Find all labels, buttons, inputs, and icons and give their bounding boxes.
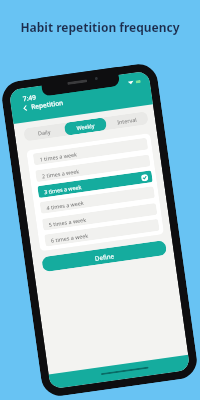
staticText: 5 times a week <box>48 216 87 228</box>
button[interactable]: 2 times a week <box>35 154 151 182</box>
button[interactable]: 5 times a week <box>42 203 157 231</box>
staticText: Define <box>94 251 115 262</box>
staticText: 3 times a week <box>44 183 82 195</box>
staticText: 2 times a week <box>41 167 80 179</box>
button[interactable]: 4 times a week <box>39 186 155 214</box>
button[interactable]: Define <box>41 240 167 272</box>
button[interactable]: 3 times a week <box>37 170 153 198</box>
button[interactable]: 1 times a week <box>33 137 148 165</box>
button[interactable]: Weekly <box>64 117 107 136</box>
button[interactable]: Interval <box>105 111 149 130</box>
staticText: 4 times a week <box>46 199 84 211</box>
other: Back <box>21 104 30 113</box>
button[interactable]: Back <box>21 98 64 113</box>
button[interactable]: 6 times a week <box>44 219 160 247</box>
staticText: 1 times a week <box>39 150 78 163</box>
staticText: 7:49 <box>22 93 36 103</box>
staticText: Interval <box>117 116 137 125</box>
button[interactable]: Daily <box>23 123 66 141</box>
staticText: 6 times a week <box>50 232 89 244</box>
staticText: Habit repetition frequency <box>0 19 200 35</box>
staticText: Weekly <box>76 122 96 131</box>
staticText: Repetition <box>31 98 64 111</box>
staticText: Daily <box>37 128 51 137</box>
